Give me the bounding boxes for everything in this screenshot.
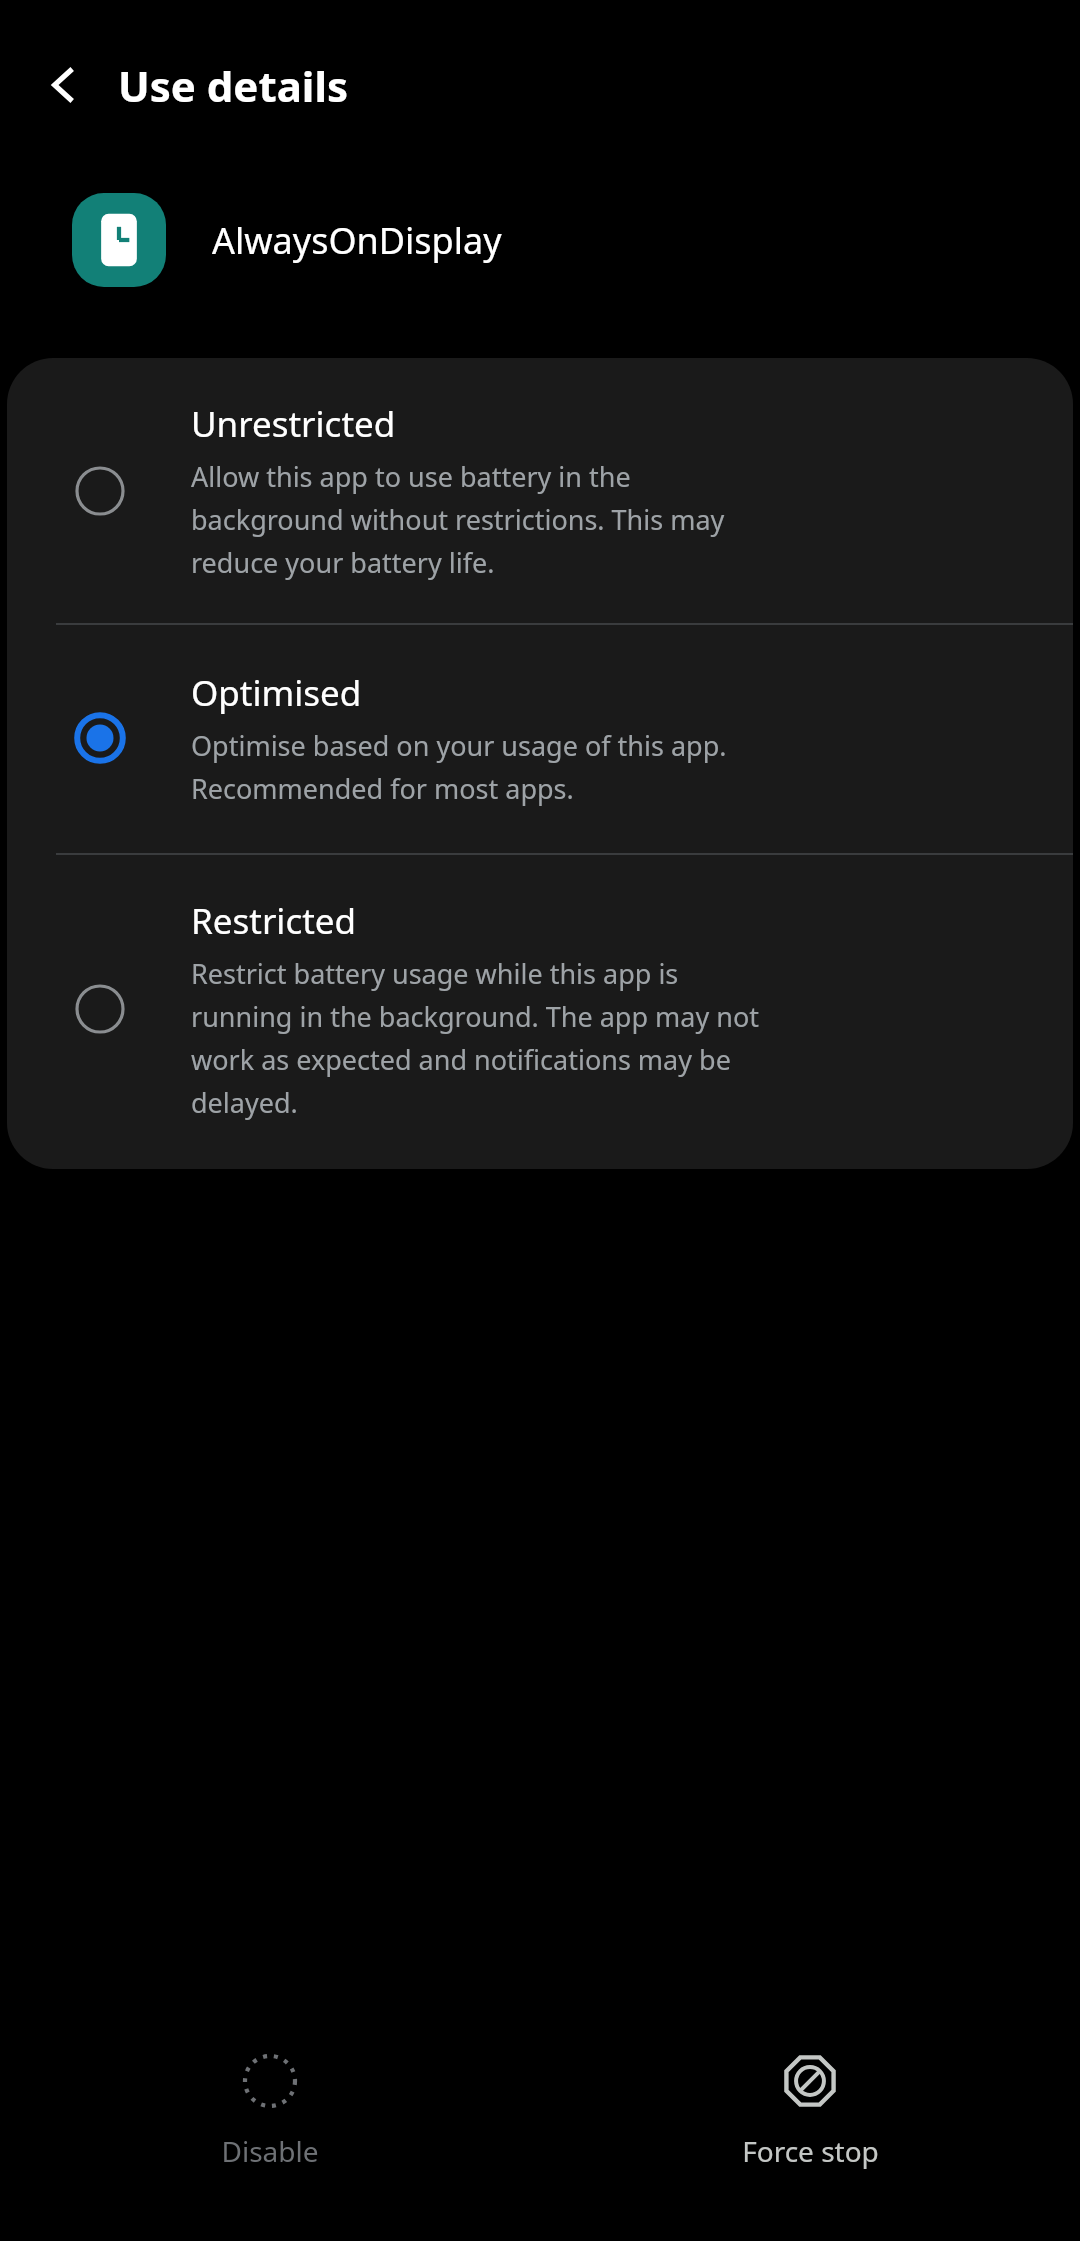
staticText: Use details xyxy=(118,57,348,114)
other: Force stop xyxy=(781,2052,839,2110)
staticText: Optimise based on your usage of this app… xyxy=(191,727,727,807)
staticText: Restrict battery usage while this app is… xyxy=(191,955,760,1121)
button[interactable]: Disable xyxy=(0,2034,540,2188)
other: Disable xyxy=(241,2052,299,2110)
staticText: AlwaysOnDisplay xyxy=(212,216,502,265)
button[interactable]: Restricted xyxy=(7,855,1073,1169)
staticText: Disable xyxy=(221,2132,319,2170)
staticText: Unrestricted xyxy=(191,400,396,448)
staticText: Optimised xyxy=(191,669,362,717)
button[interactable]: Force stop xyxy=(540,2034,1080,2188)
staticText: Allow this app to use battery in the bac… xyxy=(191,458,725,581)
button[interactable]: Back xyxy=(30,50,100,120)
staticText: Force stop xyxy=(742,2132,879,2170)
button[interactable]: Optimised xyxy=(7,625,1073,853)
button[interactable]: Unrestricted xyxy=(7,358,1073,623)
staticText: Restricted xyxy=(191,897,357,945)
